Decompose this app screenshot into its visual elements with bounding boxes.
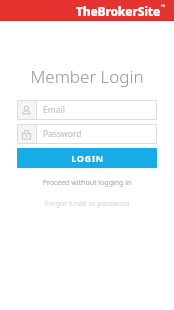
button[interactable]: Password xyxy=(17,124,157,144)
staticText: Email xyxy=(43,104,65,116)
staticText: Member Login xyxy=(0,65,174,88)
button[interactable]: Forgot email or password xyxy=(0,198,174,210)
button[interactable]: LOGIN xyxy=(17,148,157,168)
staticText: TheBrokerSite xyxy=(76,3,160,19)
button[interactable]: TheBrokerSite xyxy=(76,3,166,19)
staticText: Password xyxy=(43,128,82,140)
button[interactable]: Proceed without logging in xyxy=(0,177,174,189)
staticText: LOGIN xyxy=(71,152,104,164)
staticText: ™ xyxy=(161,3,166,11)
button[interactable]: Email xyxy=(17,100,157,120)
